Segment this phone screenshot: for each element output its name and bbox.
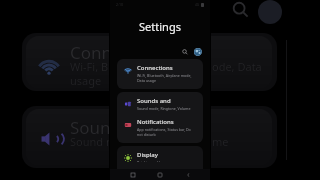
staticText: Notifications	[137, 118, 174, 126]
staticText: Sound	[70, 116, 122, 139]
staticText: Connections	[137, 64, 173, 72]
staticText: usage	[70, 73, 102, 88]
staticText: 4G	[195, 3, 200, 7]
button[interactable]: Back	[183, 170, 193, 180]
staticText: App notifications, Status bar, Do not di…	[137, 127, 197, 137]
button[interactable]: Sounds and vibration	[117, 94, 203, 115]
staticText: Wi-Fi, Bl	[70, 59, 111, 74]
staticText: Settings	[139, 19, 181, 34]
staticText: Sound mode, Ringtone, Volume	[137, 106, 191, 111]
button[interactable]: Display	[117, 148, 203, 167]
button[interactable]: Connections	[117, 59, 203, 89]
staticText: 2:10	[116, 2, 123, 7]
staticText: me	[212, 134, 229, 149]
button[interactable]: Search settings	[180, 47, 189, 56]
button[interactable]: Samsung account	[193, 47, 202, 56]
staticText: Brightness, Home screen	[137, 160, 180, 162]
staticText: Sound m	[70, 134, 117, 149]
staticText: Display	[137, 151, 158, 159]
button[interactable]: Home	[155, 170, 165, 180]
staticText: Wi-Fi, Bluetooth, Airplane mode, Data us…	[137, 73, 197, 83]
staticText: Sounds and vibration	[137, 97, 197, 105]
button[interactable]: Notifications	[117, 115, 203, 141]
staticText: Conne	[70, 41, 122, 64]
button[interactable]: Recent apps	[128, 170, 138, 180]
staticText: ode, Data	[212, 59, 262, 74]
